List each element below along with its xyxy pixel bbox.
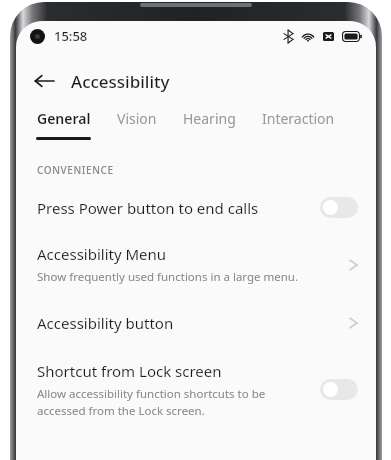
button[interactable]: General [36, 109, 91, 140]
button[interactable]: Hearing [183, 109, 236, 137]
button[interactable]: Toggle [320, 379, 358, 400]
staticText: Allow accessibility function shortcuts t… [37, 386, 266, 418]
button[interactable]: Back [26, 63, 62, 99]
staticText: Accessibility button [37, 313, 174, 333]
staticText: Accessibility [71, 70, 170, 93]
staticText: Interaction [262, 109, 335, 128]
button[interactable]: Toggle [320, 197, 358, 218]
button[interactable]: Accessibility Menu [16, 242, 376, 287]
staticText: CONVENIENCE [37, 163, 114, 177]
staticText: Hearing [183, 109, 236, 128]
button[interactable]: Vision [117, 109, 157, 137]
staticText: Press Power button to end calls [37, 198, 259, 218]
staticText: Accessibility Menu [37, 244, 167, 264]
button[interactable]: Interaction [262, 109, 335, 137]
staticText: 15:58 [54, 27, 88, 45]
staticText: Show frequently used functions in a larg… [37, 269, 299, 285]
staticText: Vision [117, 109, 157, 128]
button[interactable]: Shortcut from Lock screen [16, 359, 376, 420]
button[interactable]: Press Power button to end calls [16, 195, 376, 220]
staticText: General [37, 109, 91, 128]
button[interactable]: Accessibility button [16, 311, 376, 335]
staticText: Shortcut from Lock screen [37, 361, 222, 381]
